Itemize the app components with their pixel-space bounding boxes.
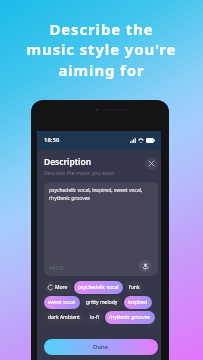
button[interactable]: More (44, 281, 72, 294)
staticText: Done (93, 343, 109, 351)
staticText: funk (129, 284, 140, 291)
button[interactable]: Done (44, 339, 158, 355)
button[interactable]: lo-fi (86, 311, 103, 324)
staticText: 44/300 (49, 265, 64, 271)
button[interactable]: dark Ambient (44, 311, 84, 324)
staticText: Describe the music style you're aiming f… (0, 19, 203, 81)
button[interactable]: sweet vocal (44, 296, 80, 309)
button[interactable]: rhythmic grooves (105, 311, 155, 324)
staticText: sweet vocal (48, 299, 76, 306)
button[interactable]: gritty melody (82, 296, 122, 309)
staticText: Description (44, 156, 91, 167)
staticText: 18:56 (44, 136, 60, 144)
staticText: lo-fi (90, 314, 99, 321)
staticText: Describe the music you want (44, 169, 115, 176)
staticText: dark Ambient (48, 314, 80, 321)
button[interactable]: inspired (124, 296, 152, 309)
button[interactable]: Close (145, 157, 158, 170)
button[interactable]: Voice input (139, 260, 151, 272)
staticText: gritty melody (86, 299, 118, 306)
button[interactable]: psychedelic vocal (74, 281, 123, 294)
staticText: rhythmic grooves (109, 314, 151, 321)
staticText: psychedelic vocal (78, 284, 119, 291)
staticText: More (55, 284, 68, 291)
staticText: psychedelic vocal, inspired, sweet vocal… (49, 187, 143, 201)
staticText: inspired (128, 299, 148, 306)
button[interactable]: funk (125, 281, 144, 294)
